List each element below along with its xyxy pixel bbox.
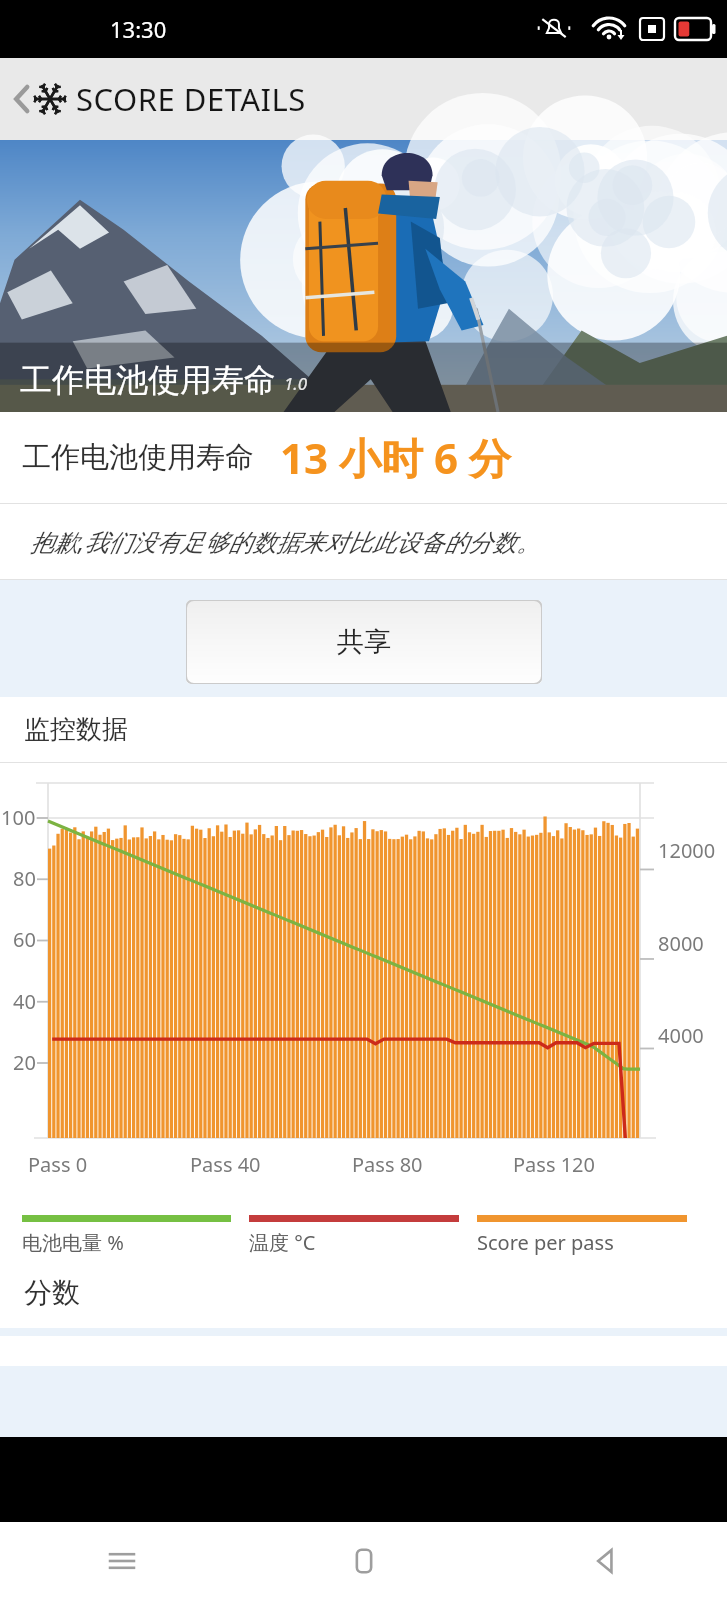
staticText: 分数	[24, 1275, 80, 1310]
staticText: Pass 120	[513, 1151, 595, 1178]
staticText: 8000	[658, 930, 704, 957]
staticText: 4000	[658, 1022, 704, 1049]
button[interactable]: Home	[243, 1522, 485, 1600]
staticText: SCORE DETAILS	[76, 78, 306, 120]
staticText: 监控数据	[24, 713, 128, 746]
staticText: 1.0	[284, 372, 308, 395]
staticText: 20	[13, 1049, 36, 1076]
staticText: 工作电池使用寿命	[22, 439, 254, 476]
staticText: 13 小时 6 分	[280, 429, 511, 486]
button[interactable]: Back	[485, 1522, 727, 1600]
staticText: 抱歉,我们没有足够的数据来对比此设备的分数。	[30, 525, 541, 558]
staticText: 13:30	[110, 14, 167, 44]
staticText: 40	[13, 988, 36, 1015]
staticText: Pass 80	[352, 1151, 423, 1178]
button[interactable]: 共享	[186, 600, 542, 684]
staticText: 60	[13, 926, 36, 953]
other: Back	[8, 79, 30, 119]
staticText: 工作电池使用寿命	[20, 360, 276, 400]
staticText: 100	[1, 804, 36, 831]
button[interactable]: Back	[0, 58, 727, 140]
staticText: 12000	[658, 837, 716, 864]
staticText: 共享	[337, 625, 391, 659]
staticText: 电池电量 %	[22, 1229, 124, 1256]
staticText: 温度 °C	[249, 1229, 316, 1256]
staticText: Pass 0	[28, 1151, 88, 1178]
staticText: 80	[13, 865, 36, 892]
staticText: Pass 40	[190, 1151, 261, 1178]
staticText: Score per pass	[477, 1229, 614, 1256]
button[interactable]: Recent apps	[0, 1522, 243, 1600]
